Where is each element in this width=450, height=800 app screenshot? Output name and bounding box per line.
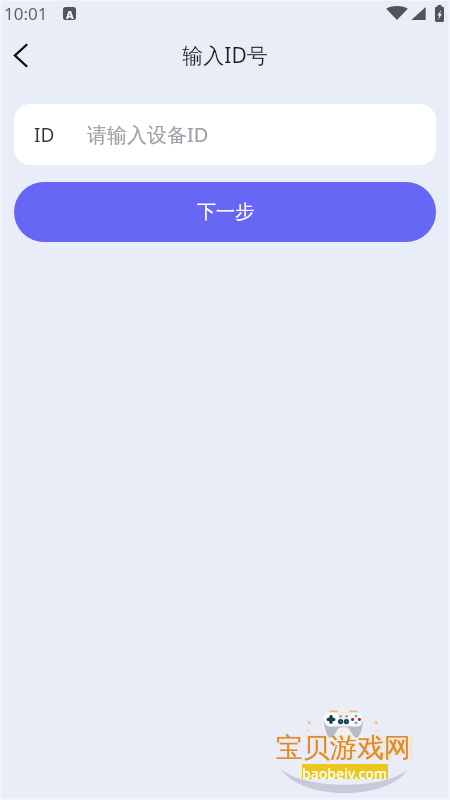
staticText: 输入ID号 <box>182 41 268 70</box>
staticText: A <box>66 7 74 20</box>
button[interactable]: ID <box>14 104 436 165</box>
staticText: baobeiy.com <box>302 764 388 779</box>
button[interactable]: 下一步 <box>14 182 436 242</box>
button[interactable]: Back <box>0 35 40 75</box>
staticText: 下一步 <box>197 200 254 224</box>
staticText: ID <box>34 122 55 148</box>
staticText: 宝贝游戏网 <box>276 731 411 765</box>
staticText: 10:01 <box>4 2 48 25</box>
staticText: 请输入设备ID <box>87 121 209 148</box>
staticText: 宝贝游戏网 <box>275 730 415 765</box>
